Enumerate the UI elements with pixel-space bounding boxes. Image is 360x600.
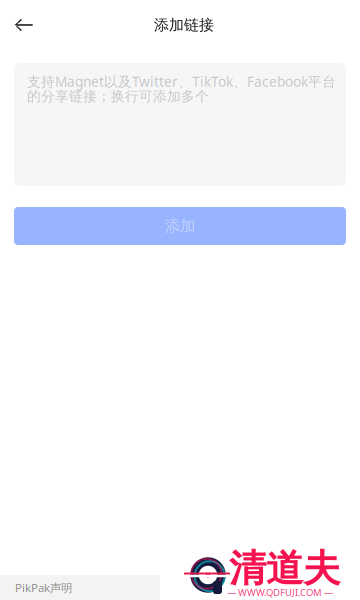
staticText: — WWW.QDFUJI.COM — <box>227 586 333 599</box>
button[interactable]: 添加 <box>14 207 346 245</box>
button[interactable]: Back <box>5 3 42 47</box>
staticText: PikPak声明 <box>15 580 72 595</box>
staticText: 支持Magnet以及Twitter、TikTok、Facebook平台的分享链接… <box>27 72 336 105</box>
staticText: 清道夫 <box>229 545 340 592</box>
staticText: 添加 <box>165 216 195 236</box>
staticText: 添加链接 <box>154 16 214 34</box>
button[interactable]: PikPak声明 <box>0 575 360 600</box>
